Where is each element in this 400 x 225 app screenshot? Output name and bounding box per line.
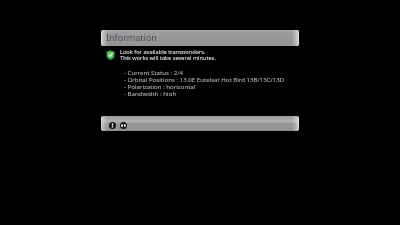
staticText: - Bandwidth : high [124, 89, 177, 96]
button[interactable]: Information [109, 122, 116, 129]
staticText: - Current Status : 2/4 [124, 68, 183, 75]
button[interactable]: Pause [120, 122, 127, 129]
staticText: Look for available transponders. [120, 48, 206, 54]
staticText: - Polarization : horizontal [124, 82, 196, 89]
staticText: Information [106, 31, 157, 43]
staticText: This works will take several minutes. [120, 54, 216, 60]
staticText: - Orbital Positions : 13.0E Eutelsat Hot… [124, 75, 285, 82]
